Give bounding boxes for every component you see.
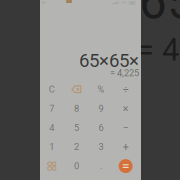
button[interactable]: +	[113, 137, 138, 156]
staticText: .	[100, 161, 102, 171]
staticText: ÷	[123, 83, 129, 95]
staticText: 9	[98, 103, 103, 114]
staticText: 4	[49, 122, 54, 133]
staticText: 65×	[139, 0, 180, 31]
button[interactable]: 3	[89, 137, 113, 156]
staticText: 3	[98, 141, 103, 152]
button[interactable]: ÷	[113, 80, 138, 99]
staticText: 8	[74, 103, 79, 114]
button[interactable]: Delete	[64, 80, 89, 99]
staticText: 65×65×	[79, 50, 139, 71]
staticText: 7	[49, 103, 54, 114]
staticText: +	[123, 141, 129, 153]
staticText: 1	[49, 141, 54, 152]
staticText: −	[123, 121, 129, 134]
button[interactable]: 4	[39, 118, 64, 137]
staticText: = 4,	[137, 32, 180, 68]
button[interactable]: ×	[113, 99, 138, 118]
staticText: 6	[98, 122, 103, 133]
button[interactable]: 8	[64, 99, 89, 118]
button[interactable]: 2	[64, 137, 89, 156]
button[interactable]: 1	[39, 137, 64, 156]
staticText: %	[97, 84, 104, 95]
staticText: 0	[74, 161, 79, 171]
button[interactable]: 9	[89, 99, 113, 118]
button[interactable]: 5	[64, 118, 89, 137]
button[interactable]: 6	[89, 118, 113, 137]
button[interactable]: 0	[64, 156, 89, 176]
staticText: = 4,225	[110, 67, 139, 78]
staticText: C	[49, 84, 55, 95]
button[interactable]: −	[113, 118, 138, 137]
staticText: 2	[74, 141, 79, 152]
staticText: 5	[74, 122, 79, 133]
button[interactable]: Converter	[39, 156, 64, 176]
button[interactable]: 7	[39, 99, 64, 118]
button[interactable]: C	[39, 80, 64, 99]
staticText: ×	[123, 102, 129, 115]
button[interactable]: %	[89, 80, 113, 99]
button[interactable]: Equals	[113, 156, 138, 176]
